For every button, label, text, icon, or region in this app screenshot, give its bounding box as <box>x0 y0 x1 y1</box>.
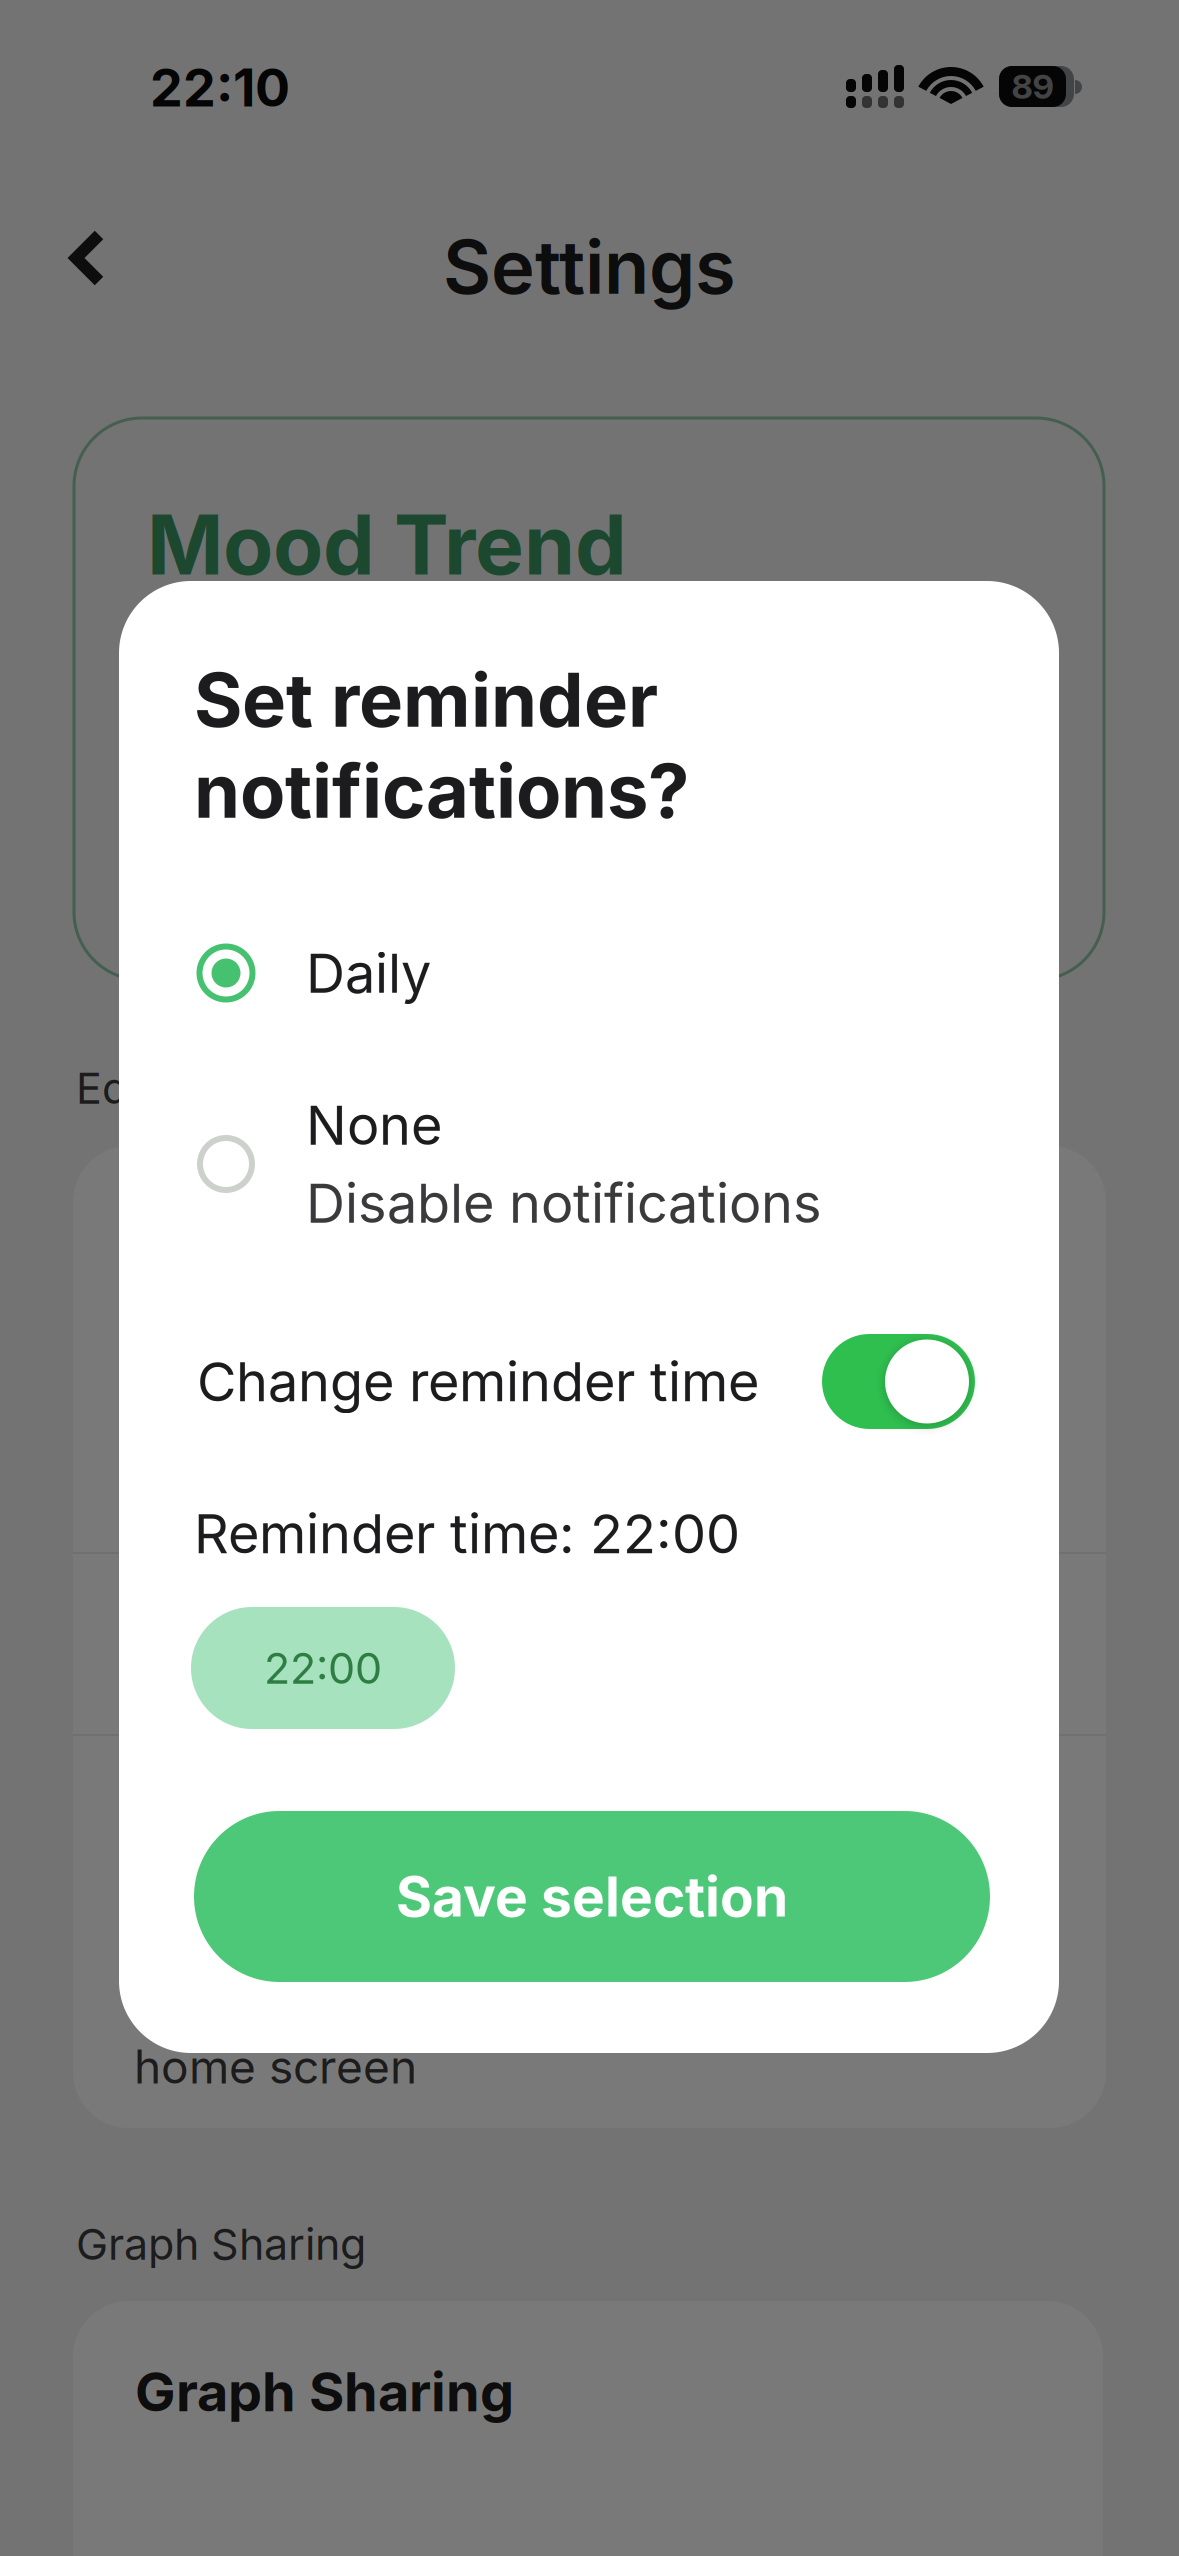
button[interactable]: 22:00 <box>191 1607 455 1729</box>
staticText: Graph Sharing <box>135 2359 514 2424</box>
staticText: Editor <box>76 1062 194 1114</box>
staticText: Change reminder time <box>197 1349 759 1414</box>
staticText: Graph Sharing <box>76 2218 366 2270</box>
button[interactable]: Back <box>67 227 119 299</box>
staticText: home screen <box>134 2039 417 2095</box>
staticText: None <box>306 1092 442 1158</box>
button[interactable]: Mood entries <box>73 1146 1106 1552</box>
staticText: 89 <box>1011 66 1053 107</box>
button[interactable]: Save selection <box>194 1811 990 1982</box>
button[interactable]: Change reminder time <box>197 1334 975 1429</box>
button[interactable]: home screen <box>73 1736 1106 2128</box>
staticText: Daily <box>306 940 431 1006</box>
staticText: Set reminder <box>194 655 658 744</box>
staticText: 22:10 <box>150 56 290 119</box>
staticText: Reminder time: 22:00 <box>194 1501 740 1566</box>
staticText: notifications? <box>194 746 689 835</box>
button[interactable]: Graph Sharing <box>73 2301 1103 2556</box>
staticText: Save selection <box>396 1863 788 1930</box>
staticText: Mood Trend <box>147 495 627 594</box>
button[interactable]: Daily <box>197 934 981 1012</box>
button[interactable]: None <box>197 1086 981 1242</box>
staticText: Disable notifications <box>306 1170 822 1236</box>
button[interactable]: Reminder notifications <box>73 1554 1106 1736</box>
staticText: 22:00 <box>264 1642 382 1694</box>
staticText: Settings <box>443 222 736 311</box>
